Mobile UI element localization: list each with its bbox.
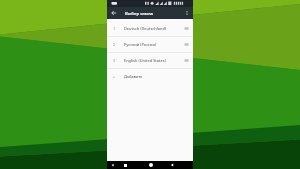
button[interactable]: Hide keyboard xyxy=(109,161,117,169)
button[interactable]: 1 xyxy=(107,21,193,36)
staticText: 3 xyxy=(113,58,116,63)
button[interactable]: Back xyxy=(107,7,121,19)
staticText: Выбор языка xyxy=(125,10,153,16)
button[interactable]: Back xyxy=(168,161,176,169)
button[interactable]: + xyxy=(107,69,193,84)
staticText: Русский (Россия) xyxy=(124,42,157,47)
button[interactable]: Recents xyxy=(121,161,129,169)
button[interactable]: Home xyxy=(147,161,155,169)
staticText: Deutsch (Deutschland) xyxy=(124,26,167,31)
button[interactable]: 2 xyxy=(107,37,193,52)
staticText: + xyxy=(113,74,116,79)
staticText: English (United States) xyxy=(124,58,166,63)
button[interactable]: More options xyxy=(181,7,193,19)
button[interactable]: 3 xyxy=(107,53,193,68)
staticText: 2 xyxy=(113,42,116,47)
staticText: 1 xyxy=(113,26,116,31)
staticText: Добавить xyxy=(124,74,143,79)
